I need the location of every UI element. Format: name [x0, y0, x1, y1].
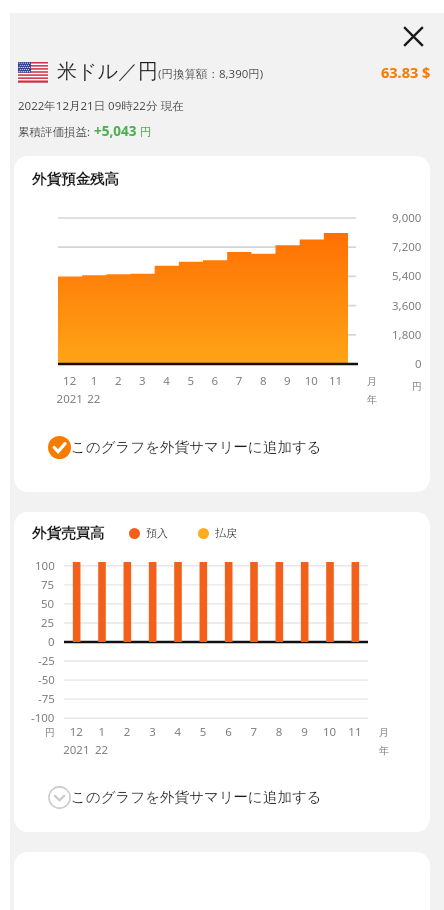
- staticText: このグラフを外貨サマリーに追加する: [71, 788, 322, 806]
- staticText: 累積評価損益:: [18, 124, 94, 140]
- button[interactable]: このグラフを外貨サマリーに追加する: [48, 776, 414, 818]
- button[interactable]: 払戻: [198, 526, 237, 540]
- staticText: 預入: [146, 526, 168, 540]
- staticText: +5,043: [94, 122, 137, 140]
- button[interactable]: 預入: [129, 526, 168, 540]
- staticText: 円: [137, 124, 152, 140]
- staticText: (円換算額：8,390円): [158, 66, 264, 82]
- staticText: 米ドル／円: [57, 59, 158, 84]
- staticText: このグラフを外貨サマリーに追加する: [71, 438, 322, 456]
- staticText: 外貨売買高: [32, 524, 105, 542]
- staticText: 外貨預金残高: [32, 170, 119, 188]
- staticText: 2022年12月21日 09時22分 現在: [18, 98, 184, 114]
- staticText: 63.83 $: [381, 62, 431, 82]
- button[interactable]: このグラフを外貨サマリーに追加する: [48, 426, 414, 468]
- button[interactable]: Close: [394, 17, 432, 55]
- staticText: 払戻: [215, 526, 237, 540]
